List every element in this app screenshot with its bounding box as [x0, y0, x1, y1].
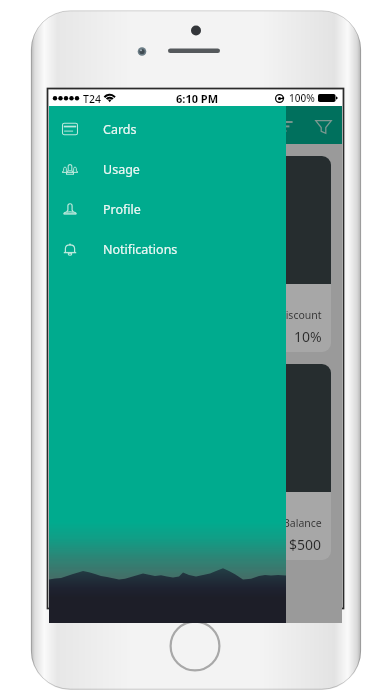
button[interactable]: Notifications: [49, 229, 286, 269]
button[interactable]: Filter: [305, 107, 341, 143]
staticText: $500: [289, 535, 322, 554]
button[interactable]: Sort: [269, 107, 305, 143]
button[interactable]: Usage: [49, 149, 286, 189]
staticText: Notifications: [103, 241, 178, 258]
staticText: T24: [83, 92, 101, 106]
staticText: Cards: [103, 121, 137, 138]
button[interactable]: Balance: [60, 364, 331, 560]
staticText: 6:10 PM: [176, 91, 219, 106]
staticText: Usage: [103, 161, 140, 178]
staticText: Profile: [103, 201, 141, 218]
button[interactable]: Discount: [60, 156, 331, 352]
staticText: 100%: [289, 91, 315, 105]
staticText: Discount: [278, 308, 322, 322]
button[interactable]: Profile: [49, 189, 286, 229]
staticText: Balance: [283, 516, 322, 530]
button[interactable]: Cards: [49, 109, 286, 149]
staticText: 10%: [294, 327, 322, 346]
